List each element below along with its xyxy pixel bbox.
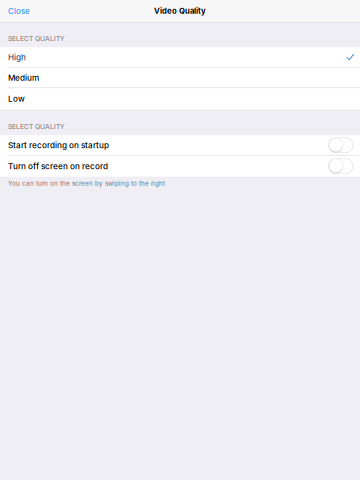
button[interactable]: Low bbox=[0, 88, 360, 109]
button[interactable]: Close bbox=[0, 2, 30, 20]
staticText: High bbox=[8, 52, 26, 62]
staticText: Close bbox=[8, 6, 30, 16]
button[interactable]: Start recording on startup bbox=[328, 138, 353, 153]
staticText: SELECT QUALITY bbox=[8, 123, 65, 131]
staticText: Video Quality bbox=[154, 6, 206, 16]
button[interactable]: Medium bbox=[0, 68, 360, 88]
staticText: Turn off screen on record bbox=[8, 161, 108, 171]
staticText: You can turn on the screen by swiping to… bbox=[8, 180, 165, 187]
staticText: SELECT QUALITY bbox=[8, 35, 65, 43]
staticText: Start recording on startup bbox=[8, 140, 109, 150]
staticText: Low bbox=[8, 94, 25, 104]
button[interactable]: Turn off screen on record bbox=[328, 159, 353, 174]
staticText: Medium bbox=[8, 73, 39, 83]
button[interactable]: High bbox=[0, 47, 360, 67]
